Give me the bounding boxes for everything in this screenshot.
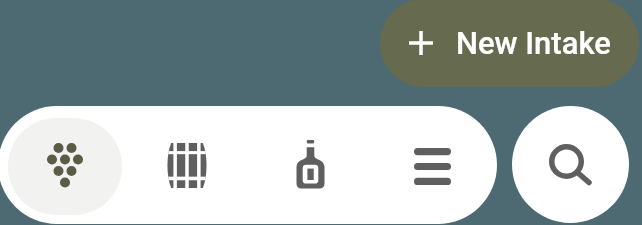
button[interactable]: Grapes: [8, 118, 122, 215]
button[interactable]: Bottles: [269, 115, 351, 212]
button[interactable]: Search: [512, 106, 629, 223]
staticText: New Intake: [456, 25, 611, 61]
button[interactable]: Barrels: [146, 117, 228, 214]
button[interactable]: New Intake: [380, 0, 639, 87]
button[interactable]: Menu: [391, 118, 473, 215]
